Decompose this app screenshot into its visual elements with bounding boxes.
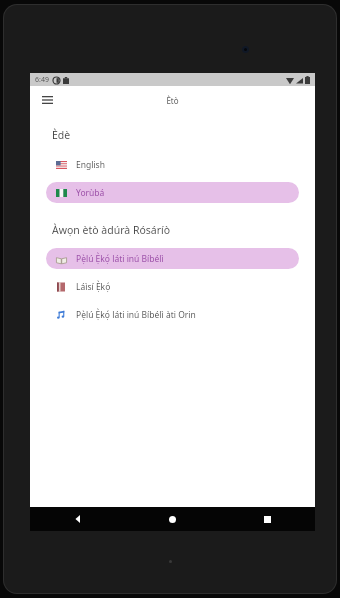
button[interactable]: English [46,154,299,175]
button[interactable]: Open navigation menu [36,89,58,111]
staticText: 6:49 [35,75,49,85]
button[interactable]: Home [125,507,220,531]
button[interactable]: Yorùbá [46,182,299,203]
staticText: Yorùbá [76,187,105,199]
staticText: Èdè [52,128,71,142]
staticText: English [76,159,105,171]
staticText: Àwọn ètò àdúrà Rósáríò [52,223,171,237]
button[interactable]: Pẹ̀lú Ẹ̀kọ́ láti inú Bíbélì [46,248,299,269]
button[interactable]: Recent apps [220,507,315,531]
staticText: Pẹ̀lú Ẹ̀kọ́ láti inú Bíbélì àti Orin [76,309,196,321]
staticText: Pẹ̀lú Ẹ̀kọ́ láti inú Bíbélì [76,253,164,265]
button[interactable]: Láìsí Ẹ̀kọ́ [46,276,299,297]
staticText: Ètò [166,95,179,106]
button[interactable]: Back [30,507,125,531]
staticText: Láìsí Ẹ̀kọ́ [76,281,111,293]
button[interactable]: Pẹ̀lú Ẹ̀kọ́ láti inú Bíbélì àti Orin [46,304,299,325]
